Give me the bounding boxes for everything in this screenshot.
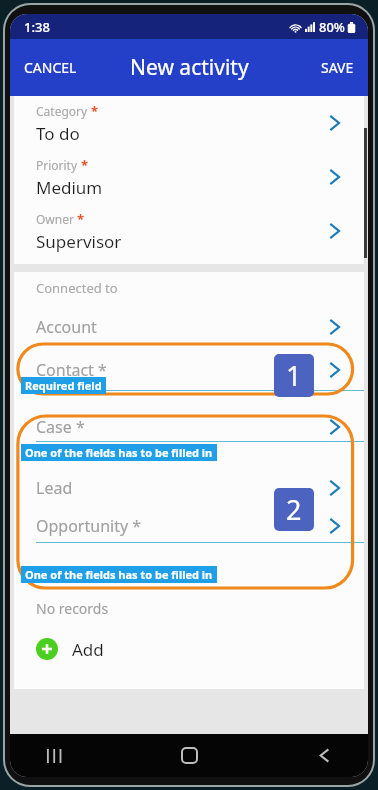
button[interactable]: Opportunity * [14, 510, 364, 543]
button[interactable]: Priority [14, 150, 364, 204]
staticText: SAVE [321, 58, 354, 77]
staticText: New activity [130, 53, 249, 82]
staticText: 2 [286, 491, 302, 528]
staticText: 80% [319, 18, 345, 36]
staticText: Participants [36, 564, 109, 582]
staticText: Required field [25, 378, 102, 393]
button[interactable]: Owner [14, 204, 364, 258]
button[interactable]: Account [14, 304, 364, 350]
staticText: Opportunity * [36, 515, 142, 537]
button[interactable]: Back [300, 734, 348, 777]
staticText: Add [72, 638, 104, 661]
staticText: * [77, 210, 85, 228]
staticText: One of the fields has to be filled in [25, 445, 213, 460]
staticText: Case * [36, 416, 85, 438]
staticText: 1 [286, 357, 302, 394]
button[interactable]: Lead [14, 466, 364, 510]
button[interactable]: Add [14, 627, 364, 671]
staticText: Priority [36, 157, 78, 173]
staticText: No records [36, 599, 109, 618]
button[interactable]: Recent apps [30, 734, 78, 777]
staticText: To do [36, 122, 80, 145]
button[interactable]: Contact * [14, 350, 364, 391]
button[interactable]: Home [165, 734, 213, 777]
staticText: One of the fields has to be filled in [25, 567, 213, 582]
staticText: Category [36, 103, 88, 119]
staticText: CANCEL [24, 58, 77, 77]
staticText: Connected to [36, 279, 118, 297]
staticText: Supervisor [36, 230, 122, 253]
staticText: Owner [36, 211, 74, 227]
staticText: 1:38 [24, 18, 50, 36]
button[interactable]: SAVE [307, 46, 368, 89]
staticText: Contact * [36, 359, 107, 381]
button[interactable]: Category [14, 96, 364, 150]
staticText: * [81, 156, 89, 174]
staticText: Medium [36, 176, 103, 199]
button[interactable]: CANCEL [10, 46, 91, 89]
button[interactable]: Case * [14, 413, 364, 442]
staticText: * [91, 102, 99, 120]
staticText: Account [36, 316, 97, 338]
staticText: Lead [36, 477, 73, 499]
